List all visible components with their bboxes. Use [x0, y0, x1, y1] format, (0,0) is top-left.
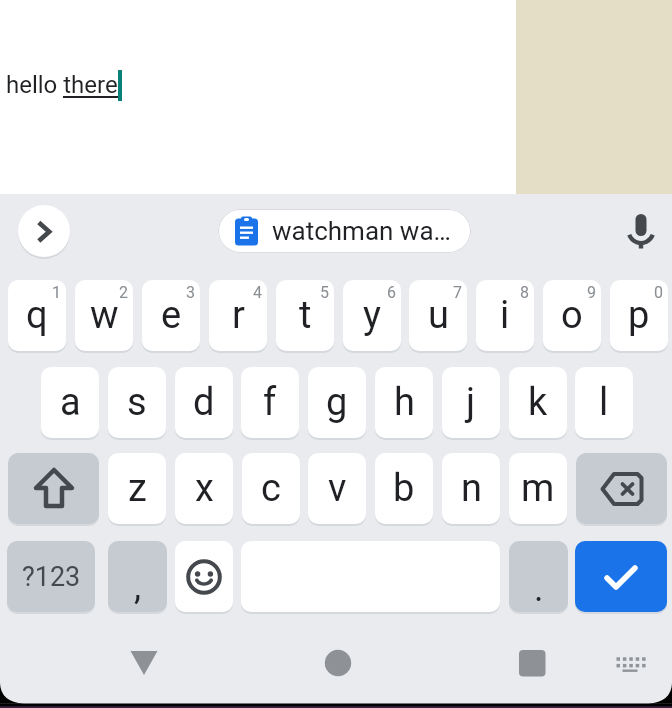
staticText: n	[461, 466, 482, 511]
button[interactable]: p	[610, 280, 668, 351]
button[interactable]: c	[242, 453, 300, 524]
staticText: w	[90, 293, 119, 338]
button[interactable]: watchman wa…	[218, 209, 471, 253]
staticText: a	[60, 380, 81, 425]
staticText: 2	[119, 283, 128, 302]
button[interactable]: .	[509, 541, 568, 612]
staticText: t	[299, 293, 312, 338]
button[interactable]: f	[241, 367, 299, 438]
staticText: 9	[587, 283, 596, 302]
staticText: c	[261, 466, 281, 511]
button[interactable]: d	[175, 367, 233, 438]
button[interactable]: w	[75, 280, 133, 351]
button[interactable]	[576, 453, 667, 524]
button[interactable]: n	[442, 453, 500, 524]
staticText: e	[161, 293, 182, 338]
button[interactable]: g	[308, 367, 366, 438]
staticText: q	[26, 293, 48, 338]
staticText: ,	[134, 566, 142, 608]
button[interactable]	[118, 640, 170, 688]
button[interactable]: s	[108, 367, 166, 438]
button[interactable]: v	[308, 453, 366, 524]
staticText: 0	[654, 283, 663, 302]
staticText: d	[193, 380, 215, 425]
button[interactable]: k	[509, 367, 567, 438]
staticText: j	[466, 380, 476, 425]
button[interactable]: ,	[108, 541, 167, 612]
button[interactable]: m	[509, 453, 567, 524]
staticText: o	[561, 293, 583, 338]
staticText: 5	[320, 283, 329, 302]
button[interactable]: r	[209, 280, 267, 351]
staticText: i	[500, 293, 510, 338]
button[interactable]: a	[41, 367, 99, 438]
staticText: m	[521, 466, 555, 511]
button[interactable]	[575, 541, 667, 612]
button[interactable]	[506, 640, 558, 688]
staticText: r	[232, 293, 245, 338]
button[interactable]: h	[375, 367, 433, 438]
button[interactable]: e	[142, 280, 200, 351]
staticText: 8	[520, 283, 529, 302]
button[interactable]: u	[409, 280, 467, 351]
staticText: 4	[253, 283, 262, 302]
staticText: watchman wa…	[272, 216, 451, 246]
button[interactable]	[312, 640, 364, 688]
staticText: hello there	[6, 71, 118, 99]
button[interactable]: b	[375, 453, 433, 524]
staticText: x	[195, 466, 214, 511]
staticText: ?123	[22, 561, 81, 593]
staticText: u	[428, 293, 449, 338]
button[interactable]: t	[276, 280, 334, 351]
staticText: g	[326, 380, 348, 425]
staticText: .	[534, 568, 544, 610]
button[interactable]	[175, 541, 233, 612]
button[interactable]	[8, 453, 99, 524]
staticText: p	[628, 293, 650, 338]
staticText: z	[128, 466, 147, 511]
staticText: 7	[453, 283, 462, 302]
staticText: 1	[52, 283, 61, 302]
staticText: y	[363, 293, 381, 338]
staticText: k	[528, 380, 548, 425]
button[interactable]: i	[476, 280, 534, 351]
button[interactable]	[617, 206, 665, 256]
staticText: v	[328, 466, 347, 511]
button[interactable]: o	[543, 280, 601, 351]
staticText: 3	[186, 283, 195, 302]
staticText: b	[393, 466, 415, 511]
button[interactable]: q	[8, 280, 66, 351]
button[interactable]	[18, 205, 70, 257]
staticText: 6	[387, 283, 396, 302]
button[interactable]: ?123	[7, 541, 95, 612]
button[interactable]	[604, 644, 656, 684]
button[interactable]: z	[108, 453, 166, 524]
button[interactable]: y	[343, 280, 401, 351]
staticText: l	[599, 380, 609, 425]
staticText: s	[127, 380, 147, 425]
staticText: h	[394, 380, 415, 425]
staticText: f	[263, 380, 277, 425]
button[interactable]: j	[442, 367, 500, 438]
button[interactable]: l	[575, 367, 633, 438]
button[interactable]: x	[175, 453, 233, 524]
